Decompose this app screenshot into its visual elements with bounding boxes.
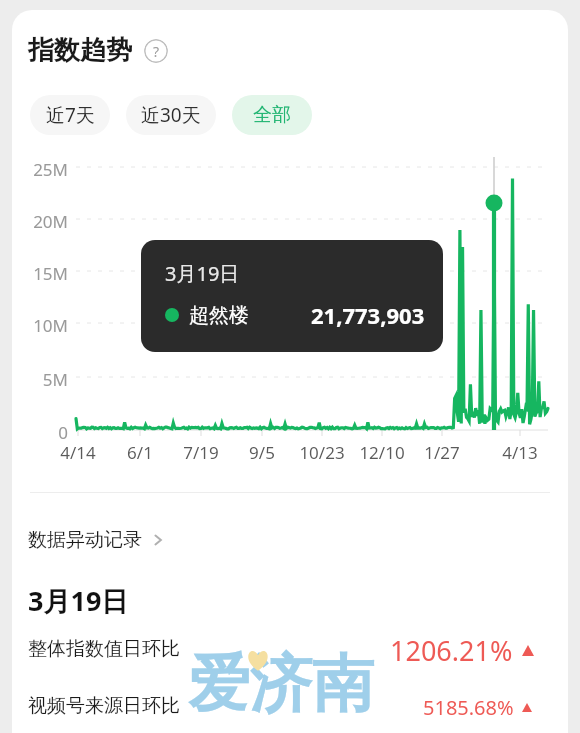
staticText: 全部: [253, 103, 291, 127]
staticText: 10M: [20, 314, 68, 337]
staticText: 4/14: [38, 441, 118, 464]
staticText: 9/5: [222, 441, 302, 464]
staticText: ?: [153, 42, 160, 61]
staticText: 25M: [20, 158, 68, 181]
button[interactable]: 近7天: [30, 95, 110, 135]
staticText: 近30天: [141, 102, 201, 128]
button[interactable]: 帮助: [144, 39, 168, 63]
staticText: 数据异动记录: [28, 528, 142, 552]
staticText: 12/10: [342, 441, 422, 464]
staticText: 10/23: [282, 441, 362, 464]
staticText: 1/27: [402, 441, 482, 464]
staticText: 1206.21%: [390, 632, 513, 669]
staticText: 4/13: [480, 441, 560, 464]
staticText: 5185.68%: [423, 694, 514, 721]
staticText: 15M: [20, 262, 68, 285]
staticText: 视频号来源日环比: [28, 694, 180, 718]
staticText: 爱济南: [188, 645, 374, 723]
staticText: 5M: [20, 368, 68, 391]
staticText: 近7天: [46, 102, 95, 128]
button[interactable]: 近30天: [126, 95, 216, 135]
button[interactable]: 全部: [232, 95, 312, 135]
staticText: 7/19: [161, 441, 241, 464]
staticText: 指数趋势: [28, 34, 132, 67]
staticText: 3月19日: [28, 582, 129, 619]
staticText: 超然楼: [189, 303, 249, 328]
staticText: 0: [20, 421, 68, 444]
staticText: 整体指数值日环比: [28, 637, 180, 661]
staticText: 20M: [20, 210, 68, 233]
button[interactable]: 数据异动记录: [28, 528, 166, 552]
staticText: 3月19日: [165, 260, 240, 287]
staticText: 6/1: [100, 441, 180, 464]
staticText: 21,773,903: [311, 300, 425, 330]
